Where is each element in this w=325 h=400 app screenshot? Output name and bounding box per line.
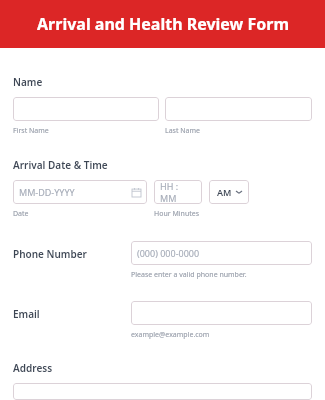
staticText: HH : MM (160, 180, 196, 204)
staticText: Phone Number (13, 247, 87, 261)
staticText: Last Name (165, 126, 201, 136)
staticText: Name (13, 75, 43, 89)
staticText: Address (13, 361, 53, 375)
staticText: Email (13, 307, 40, 321)
button[interactable]: AM (209, 180, 249, 204)
other: Pick date (132, 188, 141, 197)
staticText: Please enter a valid phone number. (131, 270, 247, 280)
staticText: First Name (13, 126, 49, 136)
staticText: Date (13, 209, 29, 219)
staticText: AM (217, 186, 232, 198)
button[interactable] (13, 383, 312, 400)
staticText: (000) 000-0000 (137, 247, 200, 259)
staticText: Arrival Date & Time (13, 158, 108, 172)
button[interactable] (131, 301, 312, 325)
button[interactable] (13, 97, 159, 121)
button[interactable] (165, 97, 312, 121)
staticText: Hour Minutes (154, 209, 200, 219)
staticText: Arrival and Health Review Form (37, 13, 289, 35)
button[interactable]: HH : MM (154, 180, 202, 204)
button[interactable]: MM-DD-YYYY (13, 180, 147, 204)
staticText: MM-DD-YYYY (19, 186, 75, 198)
button[interactable]: (000) 000-0000 (131, 241, 312, 265)
staticText: example@example.com (131, 330, 210, 340)
